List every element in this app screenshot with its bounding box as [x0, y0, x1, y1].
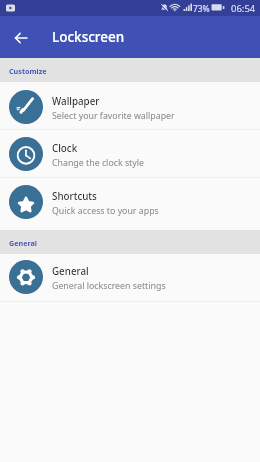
button[interactable]: Shortcuts: [0, 178, 260, 230]
staticText: General lockscreen settings: [52, 280, 166, 292]
button[interactable]: Clock: [0, 130, 260, 177]
staticText: Select your favorite wallpaper: [52, 110, 175, 122]
button[interactable]: Back: [0, 16, 42, 58]
staticText: Lockscreen: [52, 28, 125, 46]
staticText: 06:54: [231, 2, 256, 15]
staticText: 73%: [193, 3, 210, 14]
button[interactable]: Wallpaper: [0, 82, 260, 129]
staticText: Quick access to your apps: [52, 205, 159, 217]
staticText: General: [9, 238, 37, 248]
staticText: Wallpaper: [52, 95, 100, 108]
staticText: Shortcuts: [52, 190, 97, 203]
staticText: Customize: [9, 66, 47, 76]
staticText: General: [52, 265, 89, 278]
staticText: Change the clock style: [52, 157, 145, 169]
staticText: Clock: [52, 142, 78, 155]
button[interactable]: General: [0, 254, 260, 301]
